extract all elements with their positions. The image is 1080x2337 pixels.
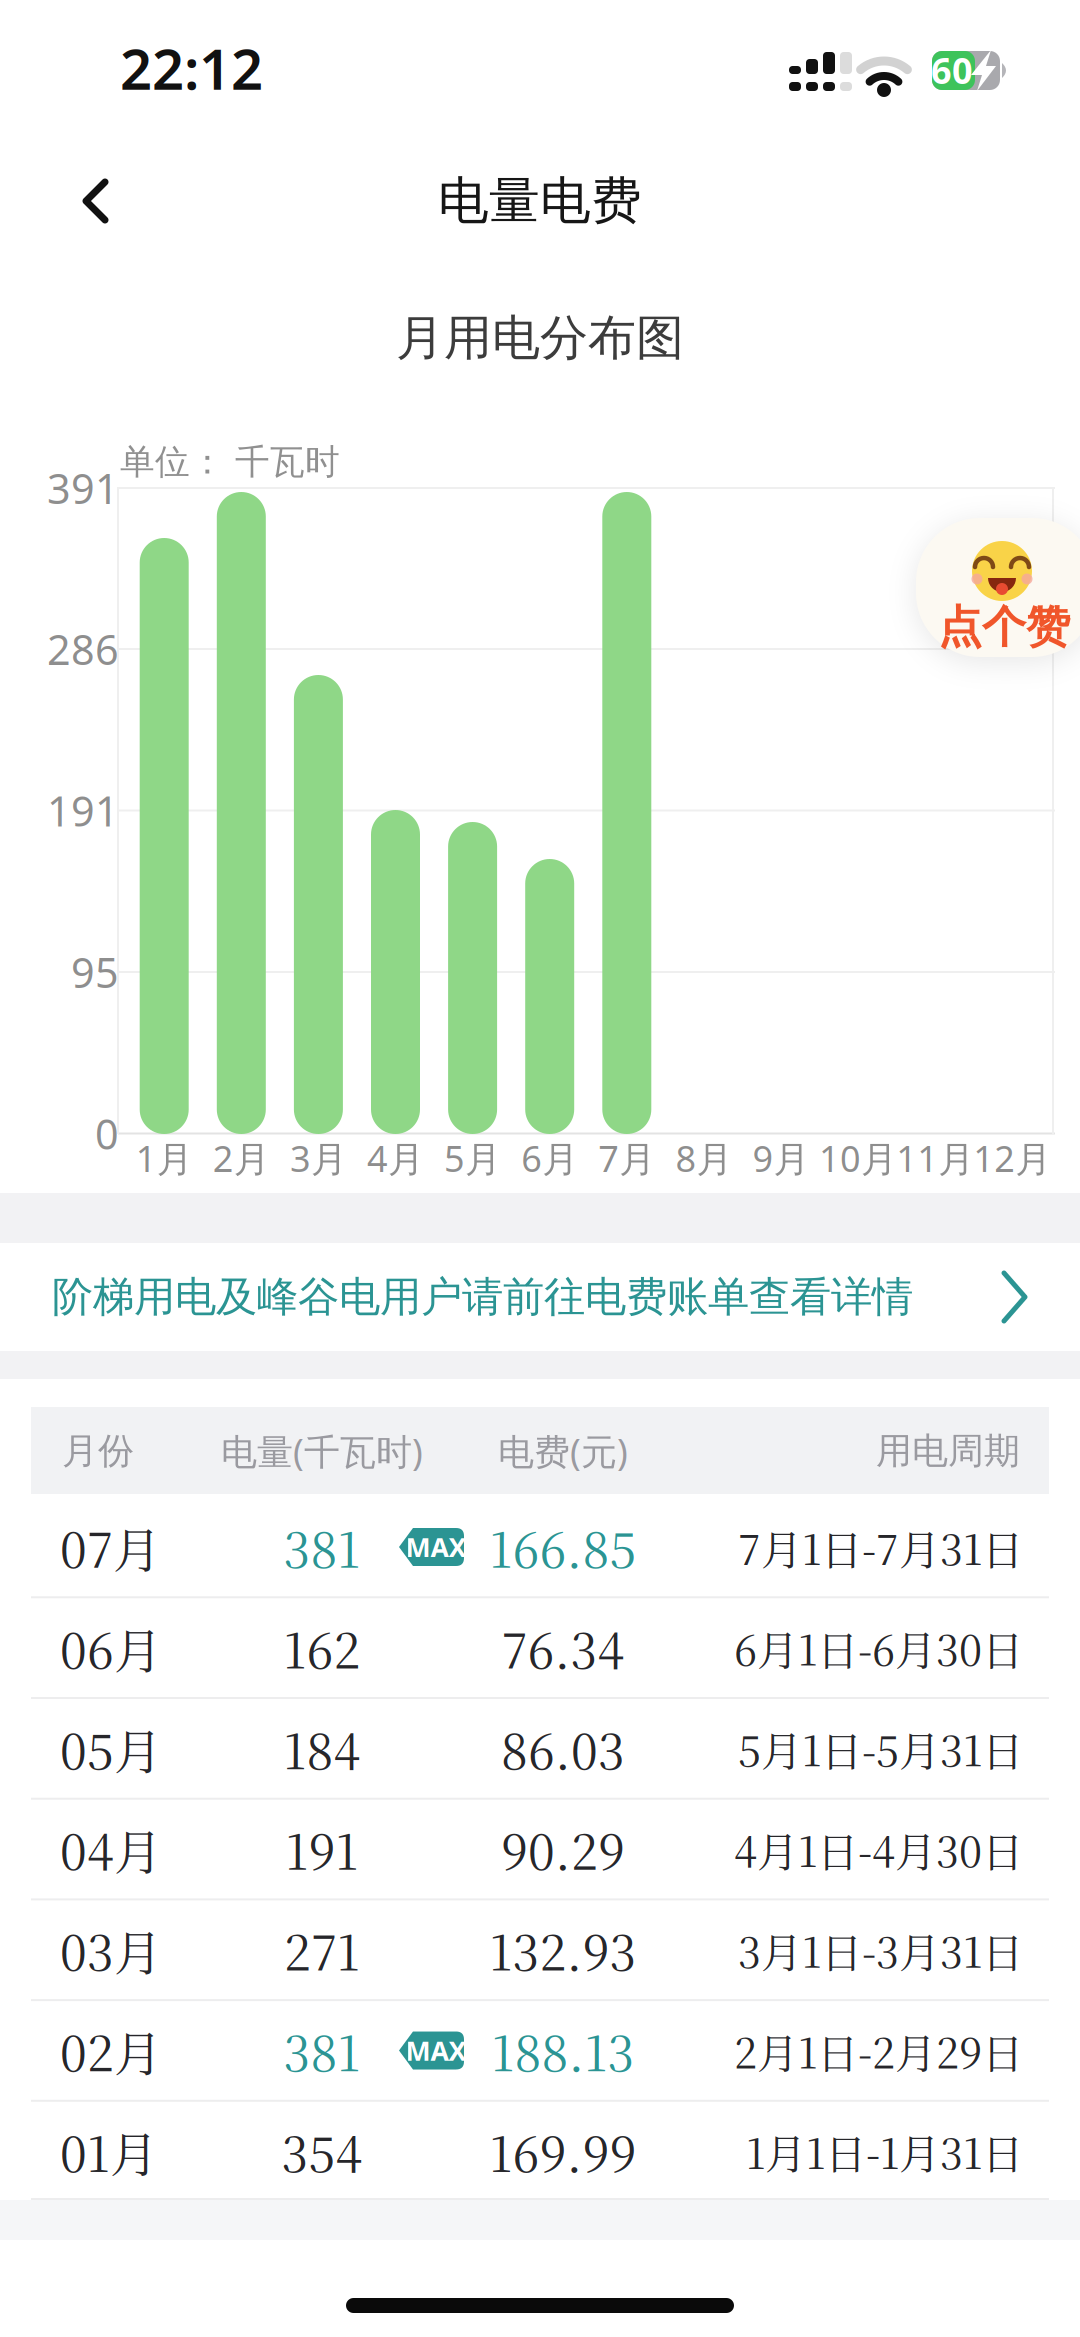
staticText: 03月 — [60, 1915, 162, 1984]
staticText: 7月1日-7月31日 — [738, 1517, 1023, 1577]
staticText: 11月 — [896, 1134, 974, 1182]
button[interactable]: Back — [59, 170, 131, 232]
staticText: 2月1日-2月29日 — [734, 2021, 1023, 2080]
staticText: 162 — [283, 1613, 360, 1682]
staticText: 391 — [47, 461, 119, 515]
staticText: 07月 — [60, 1512, 161, 1581]
staticText: 阶梯用电及峰谷电用户请前往电费账单查看详情 — [52, 1272, 913, 1322]
staticText: 10月 — [819, 1134, 897, 1182]
staticText: 单位： 千瓦时 — [120, 441, 340, 483]
staticText: 354 — [281, 2117, 362, 2186]
staticText: 6月 — [521, 1134, 578, 1182]
staticText: 2月 — [213, 1134, 270, 1182]
staticText: 90.29 — [501, 1815, 625, 1884]
staticText: 4月1日-4月30日 — [734, 1819, 1023, 1879]
staticText: MAX — [405, 2033, 466, 2068]
staticText: 3月 — [290, 1134, 347, 1182]
staticText: 95 — [71, 945, 119, 999]
staticText: 月份 — [62, 1429, 134, 1473]
staticText: 电量电费 — [438, 170, 642, 232]
staticText: 191 — [47, 783, 119, 838]
staticText: 286 — [47, 622, 119, 676]
staticText: 点个赞 — [938, 600, 1070, 654]
staticText: 1月 — [136, 1134, 193, 1182]
staticText: 05月 — [60, 1714, 162, 1783]
staticText: 381 — [283, 2016, 360, 2085]
staticText: 184 — [283, 1714, 360, 1783]
staticText: 04月 — [60, 1815, 162, 1884]
staticText: 132.93 — [489, 1915, 636, 1984]
staticText: 7月 — [598, 1134, 655, 1182]
staticText: 电费(元) — [498, 1427, 628, 1475]
staticText: 191 — [285, 1815, 358, 1884]
staticText: 188.13 — [491, 2016, 634, 2085]
staticText: 1月1日-1月31日 — [746, 2121, 1023, 2181]
staticText: 22:12 — [120, 31, 263, 105]
button[interactable]: 点个赞 — [916, 518, 1080, 657]
staticText: 06月 — [60, 1613, 162, 1682]
button[interactable]: 阶梯用电及峰谷电用户请前往电费账单查看详情 — [0, 1243, 1080, 1351]
staticText: 月用电分布图 — [396, 308, 684, 367]
staticText: 166.85 — [489, 1512, 636, 1581]
staticText: 5月1日-5月31日 — [738, 1719, 1023, 1778]
staticText: 271 — [284, 1915, 360, 1984]
staticText: 5月 — [444, 1134, 501, 1182]
staticText: 3月1日-3月31日 — [738, 1920, 1023, 1979]
staticText: MAX — [405, 1529, 466, 1565]
staticText: 8月 — [675, 1134, 732, 1182]
staticText: 电量(千瓦时) — [221, 1427, 423, 1475]
staticText: 4月 — [367, 1134, 424, 1182]
staticText: 0 — [95, 1106, 119, 1161]
staticText: 169.99 — [489, 2117, 636, 2186]
staticText: 01月 — [60, 2117, 158, 2186]
staticText: 9月 — [752, 1134, 809, 1182]
staticText: 用电周期 — [876, 1429, 1020, 1473]
staticText: 86.03 — [501, 1714, 625, 1783]
staticText: 60 — [931, 46, 973, 94]
staticText: 02月 — [60, 2016, 162, 2085]
staticText: 381 — [283, 1512, 360, 1581]
staticText: 76.34 — [501, 1613, 624, 1682]
staticText: 6月1日-6月30日 — [734, 1618, 1023, 1677]
staticText: 12月 — [973, 1134, 1051, 1182]
